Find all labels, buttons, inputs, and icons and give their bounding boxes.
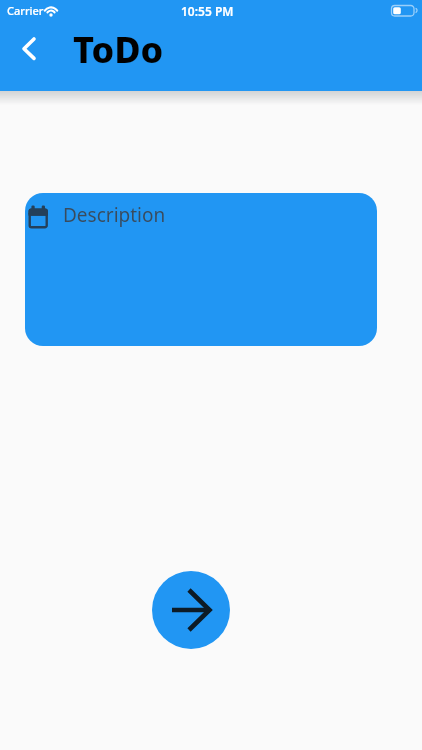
staticText: 10:55 PM	[181, 3, 234, 19]
button[interactable]: Description	[25, 193, 377, 346]
staticText: Description	[63, 202, 166, 228]
staticText: ToDo	[73, 25, 164, 74]
staticText: Carrier	[7, 3, 44, 18]
button[interactable]	[152, 571, 230, 649]
button[interactable]	[10, 34, 50, 64]
